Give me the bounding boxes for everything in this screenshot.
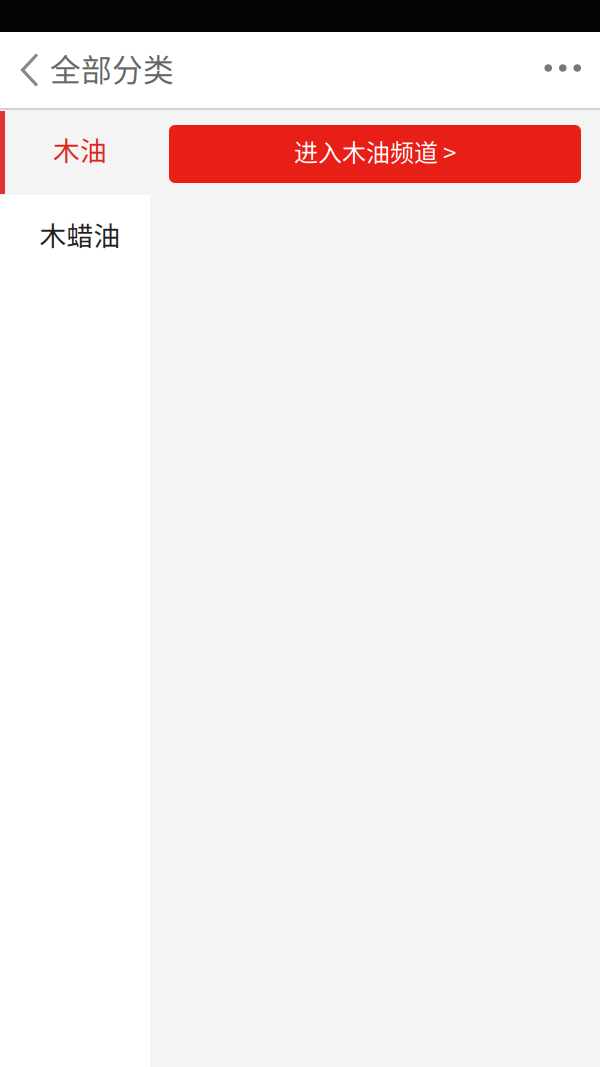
staticText: 全部分类 — [50, 46, 174, 90]
button[interactable]: 木蜡油 — [0, 195, 150, 280]
button[interactable]: More options — [522, 32, 600, 108]
button[interactable]: 全部分类 — [0, 32, 190, 108]
button[interactable]: 木油 — [0, 110, 150, 195]
button[interactable]: 进入木油频道 > — [169, 125, 581, 183]
staticText: 木蜡油 — [39, 215, 120, 253]
staticText: 木油 — [53, 130, 107, 168]
staticText: 进入木油频道 > — [294, 134, 456, 168]
